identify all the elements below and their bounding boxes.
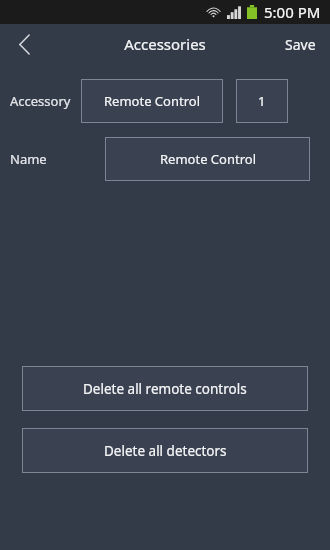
staticText: 1	[258, 92, 266, 110]
staticText: Delete all remote controls	[83, 380, 247, 398]
button[interactable]: Delete all detectors	[22, 428, 308, 473]
staticText: Delete all detectors	[104, 442, 227, 460]
staticText: 5:00 PM	[264, 2, 321, 22]
button[interactable]: Save	[271, 24, 330, 64]
staticText: Accessories	[124, 34, 206, 54]
staticText: Save	[285, 35, 316, 54]
staticText: Name	[10, 150, 47, 168]
staticText: Remote Control	[104, 92, 200, 110]
staticText: Accessory	[10, 92, 71, 110]
staticText: Remote Control	[160, 150, 256, 168]
button[interactable]: Back	[0, 24, 48, 64]
button[interactable]: Delete all remote controls	[22, 366, 308, 411]
button[interactable]: Remote Control	[81, 79, 223, 123]
button[interactable]: 1	[236, 79, 288, 123]
button[interactable]: Remote Control	[105, 137, 310, 181]
